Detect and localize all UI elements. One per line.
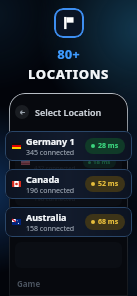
button[interactable]: App logo — [54, 8, 84, 38]
staticText: 196 connected — [34, 195, 76, 203]
staticText: 345 connected — [26, 148, 75, 158]
staticText: 68 ms — [98, 217, 119, 227]
button[interactable]: Canada — [5, 169, 132, 199]
staticText: Australia — [34, 214, 70, 225]
staticText: 52 ms — [98, 179, 119, 189]
staticText: 18 ms — [93, 158, 111, 166]
button[interactable]: USA 1 — [15, 149, 122, 175]
button[interactable]: Australia — [15, 211, 122, 237]
staticText: 52 ms — [93, 189, 111, 197]
staticText: Canada — [34, 183, 64, 194]
staticText: 80+ — [57, 45, 80, 63]
staticText: 158 connected — [34, 226, 76, 234]
staticText: USA 1 — [34, 152, 57, 163]
staticText: Australia — [26, 211, 67, 223]
button[interactable]: Australia — [5, 207, 132, 237]
staticText: Germany 1 — [26, 135, 75, 147]
button[interactable]: Back — [15, 105, 29, 119]
staticText: 432 connected — [34, 164, 76, 172]
staticText: Video Stream — [17, 132, 71, 143]
staticText: 68 ms — [93, 220, 111, 228]
staticText: 196 connected — [26, 186, 75, 196]
staticText: 28 ms — [98, 141, 119, 151]
staticText: LOCATIONS — [28, 65, 109, 83]
button[interactable]: Canada — [15, 180, 122, 206]
staticText: Canada — [26, 173, 60, 185]
staticText: 158 connected — [26, 224, 75, 234]
button[interactable]: Germany 1 — [5, 131, 132, 161]
staticText: Select Location — [35, 106, 102, 118]
staticText: Game — [17, 278, 41, 289]
